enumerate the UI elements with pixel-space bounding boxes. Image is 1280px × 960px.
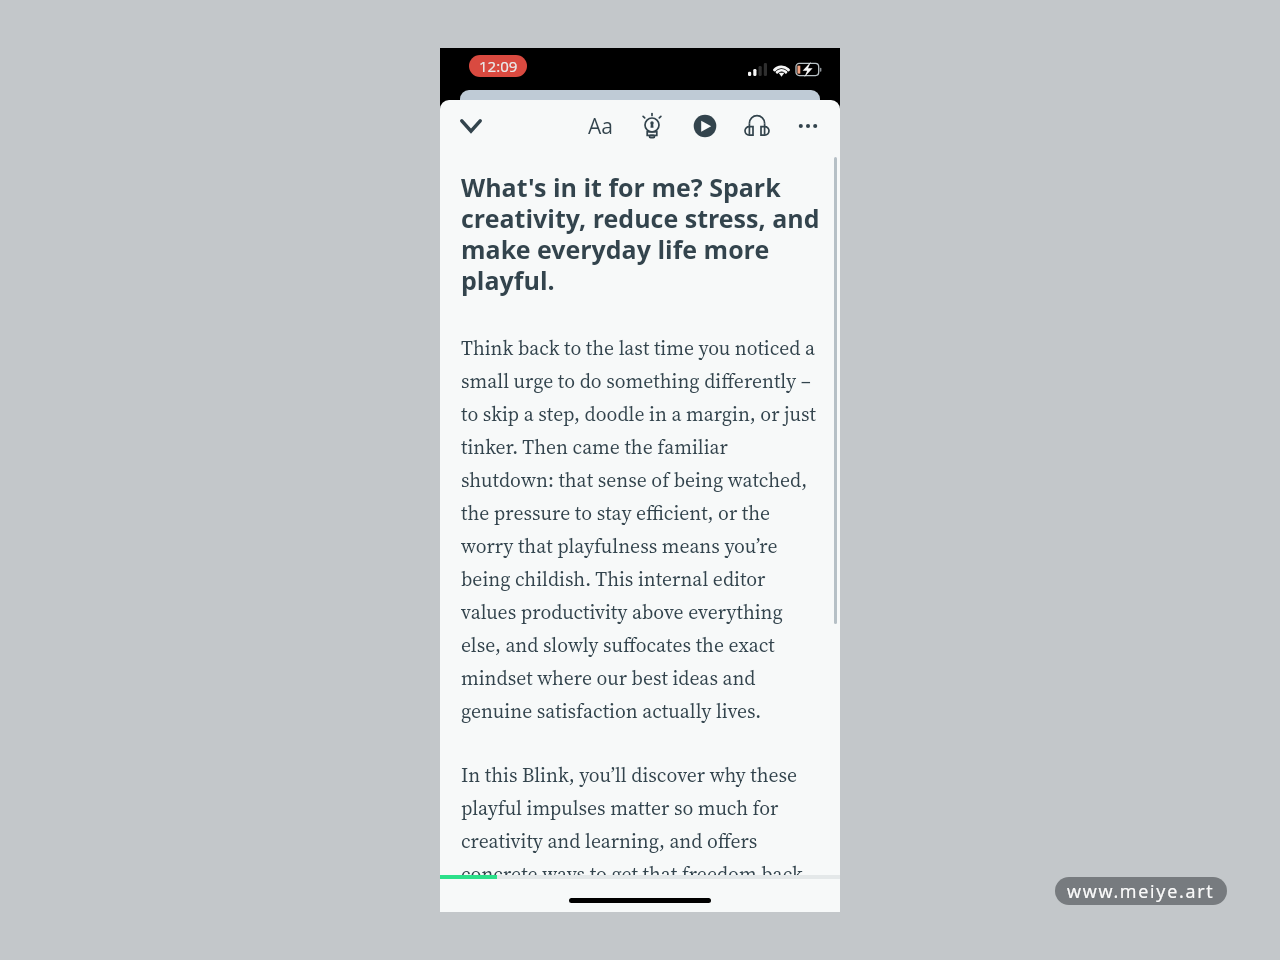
staticText: 12:09: [479, 56, 518, 76]
button[interactable]: Play: [683, 104, 727, 148]
staticText: Aa: [588, 112, 613, 141]
button[interactable]: Audio: [735, 104, 779, 148]
button[interactable]: Text size: [578, 104, 622, 148]
staticText: Think back to the last time you noticed …: [461, 335, 824, 725]
staticText: What's in it for me? Spark creativity, r…: [461, 170, 824, 297]
button[interactable]: Collapse: [449, 104, 493, 148]
button[interactable]: More options: [786, 104, 830, 148]
button[interactable]: Highlights: [630, 104, 674, 148]
staticText: www.meiye.art: [1067, 879, 1215, 904]
staticText: In this Blink, you’ll discover why these…: [461, 762, 824, 875]
